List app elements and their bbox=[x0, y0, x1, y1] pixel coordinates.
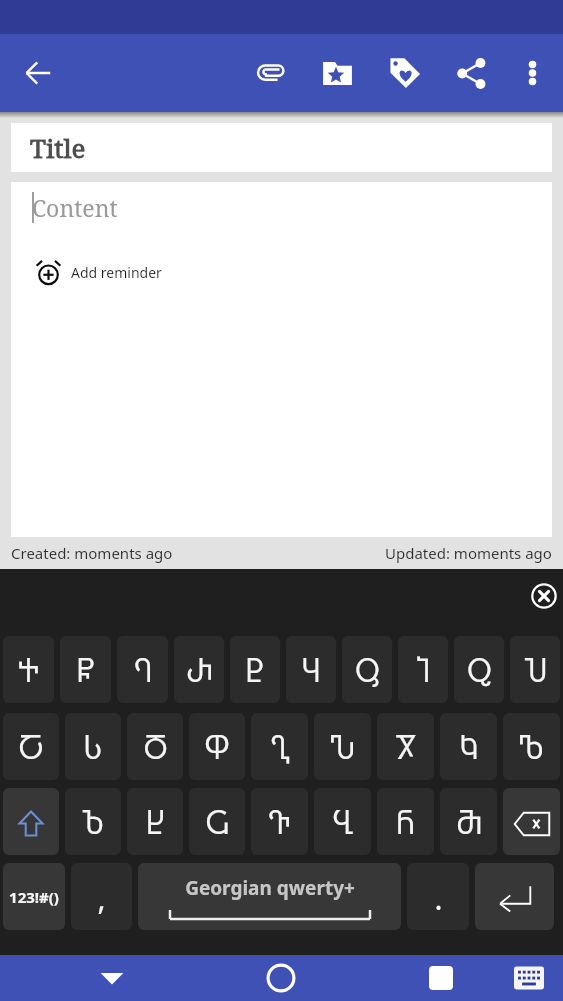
button[interactable]: Content bbox=[11, 182, 552, 537]
button[interactable]: , bbox=[71, 863, 132, 930]
button[interactable]: . bbox=[407, 863, 469, 930]
staticText: Ⴋ bbox=[456, 807, 482, 841]
button[interactable]: Space bbox=[138, 863, 401, 930]
staticText: Ⴌ bbox=[396, 807, 415, 841]
button[interactable]: Ⴕ bbox=[3, 636, 54, 703]
staticText: Ⴆ bbox=[82, 807, 104, 841]
button[interactable]: Ⴒ bbox=[230, 636, 280, 703]
staticText: Ⴎ bbox=[524, 655, 547, 689]
button[interactable]: Labels bbox=[371, 34, 438, 112]
button[interactable]: Ⴍ bbox=[454, 636, 504, 703]
staticText: Ⴄ bbox=[134, 655, 152, 689]
button[interactable]: Switch keyboard bbox=[507, 955, 551, 1001]
button[interactable]: Ⴁ bbox=[314, 788, 371, 855]
staticText: Ⴟ bbox=[395, 732, 417, 766]
button[interactable]: 123!#() bbox=[3, 863, 65, 930]
staticText: , bbox=[97, 878, 106, 919]
staticText: Ⴑ bbox=[84, 732, 102, 766]
button[interactable]: Ⴗ bbox=[286, 636, 336, 703]
staticText: Ⴐ bbox=[186, 655, 213, 689]
staticText: Ⴠ bbox=[330, 732, 355, 766]
button[interactable]: Back bbox=[90, 955, 134, 1001]
staticText: Ⴂ bbox=[270, 732, 290, 766]
button[interactable]: Ⴃ bbox=[127, 713, 183, 780]
button[interactable]: Ⴅ bbox=[251, 788, 308, 855]
staticText: Ⴓ bbox=[355, 655, 380, 689]
staticText: Ⴕ bbox=[18, 655, 39, 689]
staticText: Ⴃ bbox=[143, 732, 168, 766]
staticText: Ⴊ bbox=[519, 732, 544, 766]
staticText: Ⴜ bbox=[77, 655, 95, 689]
staticText: Add reminder bbox=[71, 263, 162, 282]
button[interactable]: Ⴟ bbox=[377, 713, 434, 780]
button[interactable]: Ⴜ bbox=[60, 636, 111, 703]
staticText: Ⴁ bbox=[332, 807, 354, 841]
button[interactable]: Ⴉ bbox=[440, 713, 497, 780]
button[interactable]: Shift bbox=[3, 788, 59, 855]
button[interactable]: Ⴞ bbox=[127, 788, 183, 855]
button[interactable]: Ⴆ bbox=[65, 788, 121, 855]
staticText: Ⴗ bbox=[302, 655, 320, 689]
button[interactable]: Ⴂ bbox=[251, 713, 308, 780]
staticText: Created: moments ago bbox=[11, 543, 173, 563]
button[interactable]: Title bbox=[11, 123, 552, 172]
button[interactable]: Ⴠ bbox=[314, 713, 371, 780]
button[interactable]: Ⴎ bbox=[510, 636, 560, 703]
staticText: Ⴚ bbox=[205, 807, 229, 841]
button[interactable]: Enter bbox=[475, 863, 554, 930]
button[interactable]: Ⴀ bbox=[3, 713, 59, 780]
staticText: Content bbox=[32, 192, 118, 223]
button[interactable]: Ⴊ bbox=[503, 713, 560, 780]
staticText: Ⴀ bbox=[18, 732, 44, 766]
button[interactable]: Ⴔ bbox=[189, 713, 245, 780]
staticText: Updated: moments ago bbox=[385, 543, 552, 563]
button[interactable]: Ⴑ bbox=[65, 713, 121, 780]
button[interactable]: Ⴓ bbox=[342, 636, 392, 703]
button[interactable]: Ⴐ bbox=[174, 636, 224, 703]
staticText: Ⴒ bbox=[246, 655, 264, 689]
staticText: 123!#() bbox=[9, 887, 59, 907]
button[interactable]: Ⴄ bbox=[117, 636, 168, 703]
button[interactable]: Hide keyboard bbox=[528, 580, 560, 612]
staticText: Ⴔ bbox=[204, 732, 230, 766]
staticText: Ⴅ bbox=[268, 807, 291, 841]
button[interactable]: Ⴚ bbox=[189, 788, 245, 855]
staticText: Ⴈ bbox=[416, 655, 430, 689]
button[interactable]: Attach file bbox=[237, 34, 304, 112]
button[interactable]: Add reminder bbox=[11, 253, 186, 292]
button[interactable]: Back bbox=[9, 34, 66, 112]
button[interactable]: Ⴈ bbox=[398, 636, 448, 703]
button[interactable]: Ⴋ bbox=[440, 788, 497, 855]
staticText: Georgian qwerty+ bbox=[185, 875, 355, 901]
staticText: Title bbox=[30, 130, 86, 165]
staticText: Ⴉ bbox=[460, 732, 478, 766]
button[interactable]: Move to folder bbox=[304, 34, 371, 112]
staticText: Ⴍ bbox=[467, 655, 492, 689]
staticText: Ⴞ bbox=[146, 807, 165, 841]
button[interactable]: Share bbox=[438, 34, 505, 112]
button[interactable]: Backspace bbox=[503, 788, 560, 855]
button[interactable]: Home bbox=[259, 955, 303, 1001]
button[interactable]: More options bbox=[505, 34, 559, 112]
staticText: . bbox=[434, 878, 443, 919]
button[interactable]: Ⴌ bbox=[377, 788, 434, 855]
button[interactable]: Recent apps bbox=[419, 955, 463, 1001]
